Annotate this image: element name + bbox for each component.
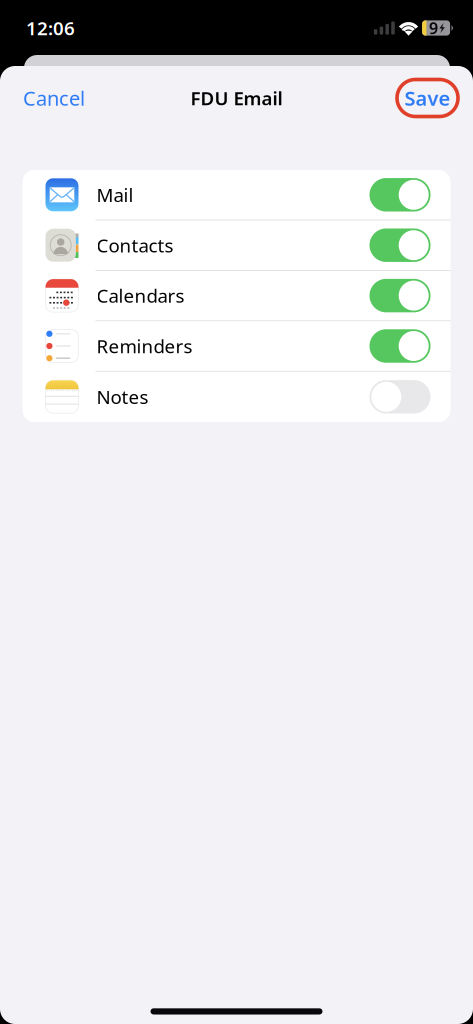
staticText: Calendars	[96, 283, 184, 308]
button[interactable]: Calendars	[22, 271, 450, 321]
button[interactable]: Cancel	[0, 76, 99, 120]
button[interactable]: Reminders	[22, 321, 450, 372]
staticText: Reminders	[96, 334, 192, 358]
staticText: Mail	[96, 182, 133, 207]
button[interactable]: Contacts	[22, 220, 450, 271]
button[interactable]: Save	[397, 79, 473, 116]
staticText: Notes	[96, 384, 148, 409]
staticText: Save	[404, 85, 450, 111]
button[interactable]: Mail	[22, 170, 450, 220]
staticText: FDU Email	[190, 86, 282, 110]
staticText: Contacts	[96, 233, 173, 258]
staticText: Cancel	[23, 85, 85, 111]
staticText: 12:06	[26, 16, 75, 40]
button[interactable]: Notes	[22, 372, 450, 422]
staticText: 9	[429, 17, 438, 39]
